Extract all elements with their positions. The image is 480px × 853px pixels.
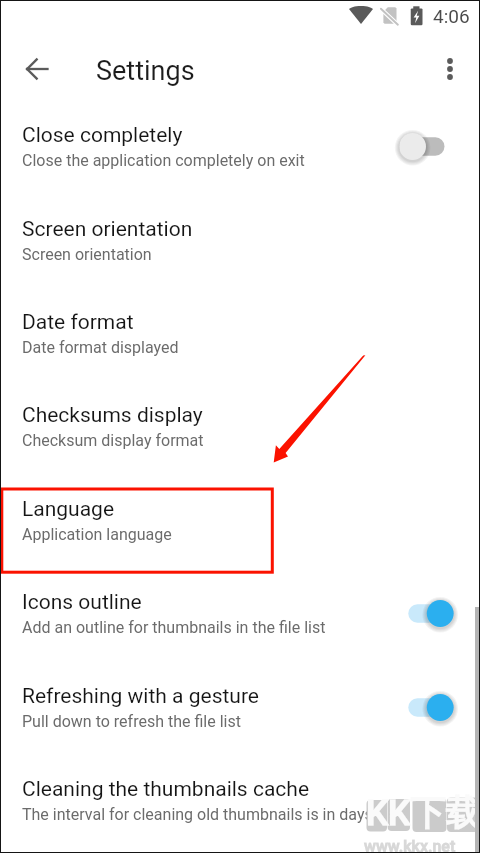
staticText: Date format (22, 310, 134, 335)
button[interactable]: Icons outline toggle (394, 591, 450, 636)
button[interactable]: Icons outline (0, 572, 480, 665)
button[interactable]: Close completely toggle (394, 124, 450, 169)
staticText: www.kkx.net (364, 837, 456, 853)
button[interactable]: Refreshing with a gesture (0, 666, 480, 759)
button[interactable]: Date format (0, 292, 480, 385)
staticText: Screen orientation (22, 217, 193, 242)
staticText: Date format displayed (22, 338, 179, 357)
staticText: Close the application completely on exit (22, 151, 305, 170)
button[interactable]: Language (0, 479, 480, 572)
staticText: Icons outline (22, 590, 142, 615)
staticText: Settings (96, 55, 195, 87)
staticText: Cleaning the thumbnails cache (22, 777, 310, 802)
staticText: Screen orientation (22, 245, 152, 264)
staticText: Checksum display format (22, 431, 204, 450)
button[interactable]: Cleaning the thumbnails cache (0, 759, 480, 852)
staticText: Add an outline for thumbnails in the fil… (22, 618, 326, 637)
button[interactable]: Checksums display (0, 385, 480, 478)
button[interactable]: Refreshing with a gesture toggle (394, 685, 450, 730)
staticText: The interval for cleaning old thumbnails… (22, 805, 373, 824)
staticText: KK下载 (366, 791, 480, 835)
staticText: Language (22, 497, 115, 522)
staticText: Application language (22, 525, 172, 544)
button[interactable]: More options (426, 45, 474, 93)
staticText: Checksums display (22, 403, 203, 428)
button[interactable]: Back (14, 45, 62, 93)
staticText: Close completely (22, 123, 183, 148)
button[interactable]: Close completely (0, 105, 480, 198)
button[interactable]: Screen orientation (0, 199, 480, 292)
staticText: 4:06 (433, 5, 470, 27)
staticText: Pull down to refresh the file list (22, 712, 241, 731)
staticText: Refreshing with a gesture (22, 684, 259, 709)
